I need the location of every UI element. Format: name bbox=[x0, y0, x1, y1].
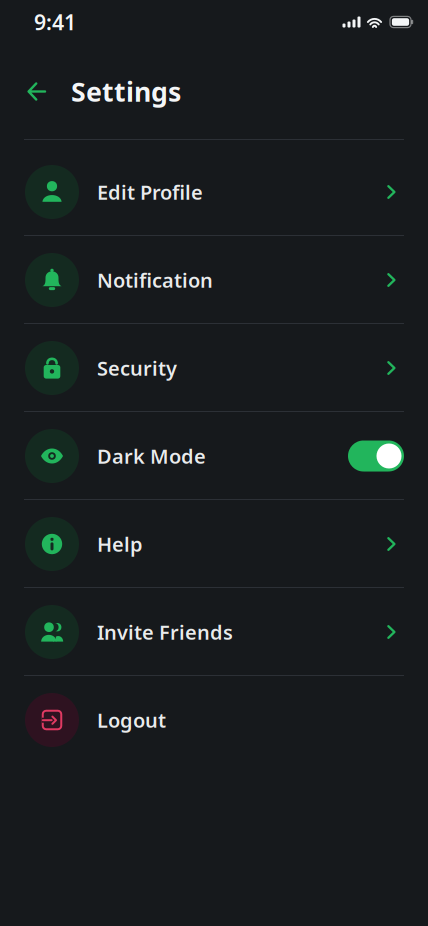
button[interactable]: Security bbox=[0, 324, 428, 411]
staticText: 9:41 bbox=[34, 8, 76, 36]
button[interactable]: Notification bbox=[0, 236, 428, 323]
button[interactable]: Help bbox=[0, 500, 428, 587]
staticText: Settings bbox=[71, 74, 181, 109]
staticText: Logout bbox=[97, 707, 166, 733]
staticText: Notification bbox=[97, 267, 213, 293]
button[interactable]: Back bbox=[20, 74, 54, 108]
staticText: Dark Mode bbox=[97, 443, 206, 469]
button[interactable]: Invite Friends bbox=[0, 588, 428, 675]
staticText: Invite Friends bbox=[97, 619, 233, 645]
staticText: Security bbox=[97, 355, 177, 381]
staticText: Edit Profile bbox=[97, 179, 203, 205]
button[interactable]: Dark Mode bbox=[0, 412, 428, 499]
button[interactable]: Edit Profile bbox=[0, 148, 428, 235]
button[interactable]: Logout bbox=[0, 676, 428, 763]
staticText: Help bbox=[97, 531, 143, 557]
